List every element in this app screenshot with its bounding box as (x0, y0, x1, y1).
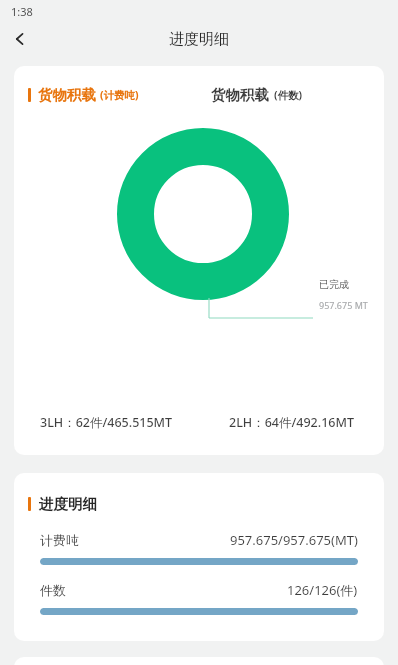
staticText: 2LH：64件/492.16MT (229, 414, 354, 431)
staticText: 进度明细 (169, 30, 229, 49)
staticText: 3LH：62件/465.515MT (40, 414, 173, 431)
button[interactable]: 货物积载 (199, 86, 384, 104)
staticText: 货物积载 (211, 86, 269, 104)
staticText: (计费吨) (100, 88, 139, 102)
staticText: 126/126(件) (287, 581, 358, 599)
staticText: 件数 (40, 582, 66, 598)
staticText: 计费吨 (40, 532, 79, 548)
staticText: 货物积载 (38, 86, 96, 104)
staticText: 1:38 (11, 4, 33, 19)
staticText: 已完成 (319, 278, 349, 291)
staticText: 进度明细 (39, 495, 97, 513)
staticText: (件数) (274, 88, 303, 102)
button[interactable]: Back (0, 22, 40, 56)
staticText: 957.675/957.675(MT) (230, 531, 358, 549)
button[interactable]: 货物积载 (14, 86, 199, 104)
staticText: 957.675 MT (319, 299, 368, 311)
